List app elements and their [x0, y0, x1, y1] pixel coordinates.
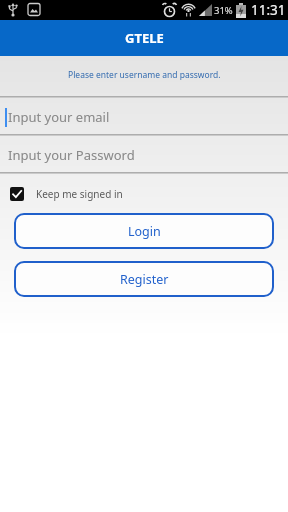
staticText: Please enter username and password.: [68, 69, 221, 81]
staticText: Login: [128, 223, 161, 240]
button[interactable]: Keep me signed in: [10, 187, 123, 201]
staticText: Register: [120, 271, 169, 288]
staticText: Input your email: [8, 108, 110, 126]
staticText: 11:31: [251, 1, 286, 19]
staticText: 31%: [214, 4, 233, 17]
button[interactable]: Input your email: [0, 98, 288, 136]
staticText: Keep me signed in: [36, 187, 123, 201]
button[interactable]: Input your Password: [0, 136, 288, 174]
button[interactable]: Register: [14, 261, 274, 297]
staticText: Input your Password: [8, 146, 135, 164]
button[interactable]: Login: [14, 213, 274, 249]
staticText: GTELE: [125, 29, 164, 47]
